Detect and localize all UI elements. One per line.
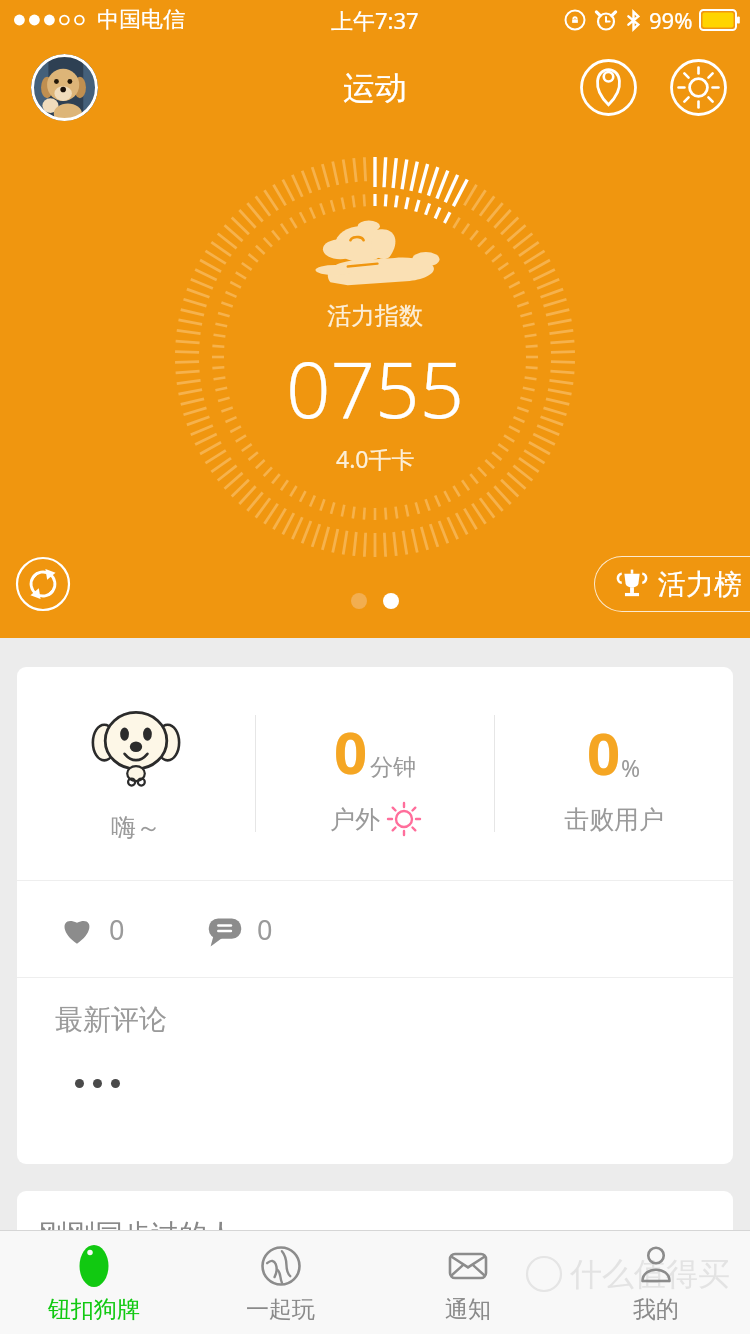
staticText: 0	[109, 911, 125, 948]
button[interactable]: 0	[199, 903, 281, 956]
staticText: 刚刚同步过的人	[39, 1217, 235, 1252]
staticText: 一起玩	[246, 1295, 315, 1324]
staticText: 4.0千卡	[336, 443, 415, 474]
staticText: 活力指数	[327, 301, 423, 331]
staticText: 我的	[633, 1295, 679, 1324]
button[interactable]: 嗨～	[17, 667, 255, 880]
staticText: 0	[334, 712, 368, 791]
staticText: 最新评论	[55, 1002, 167, 1037]
staticText: 0	[587, 713, 621, 792]
button[interactable]: 通知	[374, 1231, 562, 1334]
staticText: 通知	[445, 1295, 491, 1324]
staticText: 0755	[286, 335, 465, 441]
staticText: 上午7:37	[331, 5, 419, 35]
staticText: 运动	[343, 68, 407, 108]
staticText: 什么值得买	[570, 1254, 730, 1294]
button[interactable]: 一起玩	[187, 1231, 374, 1334]
button[interactable]: 我的	[562, 1231, 750, 1334]
staticText: 嗨～	[111, 812, 161, 843]
staticText: 99%	[649, 5, 693, 35]
staticText: 中国电信	[97, 6, 185, 34]
button[interactable]: 0	[51, 903, 133, 956]
staticText: %	[621, 752, 641, 783]
button[interactable]: Profile	[31, 54, 98, 121]
button[interactable]: Location	[579, 58, 638, 117]
staticText: 户外	[330, 804, 380, 835]
button[interactable]: Weather	[669, 58, 728, 117]
button[interactable]: 活力榜	[594, 556, 750, 612]
staticText: 0	[257, 911, 273, 948]
button[interactable]: 0	[256, 667, 494, 880]
button[interactable]: Sync	[15, 556, 71, 612]
button[interactable]: 刚刚同步过的人	[17, 1191, 733, 1334]
staticText: 活力榜	[658, 567, 742, 602]
staticText: 分钟	[370, 753, 416, 782]
staticText: 击败用户	[564, 804, 664, 835]
button[interactable]: 钮扣狗牌	[0, 1231, 187, 1334]
staticText: 钮扣狗牌	[48, 1295, 140, 1324]
button[interactable]: 0	[495, 667, 733, 880]
